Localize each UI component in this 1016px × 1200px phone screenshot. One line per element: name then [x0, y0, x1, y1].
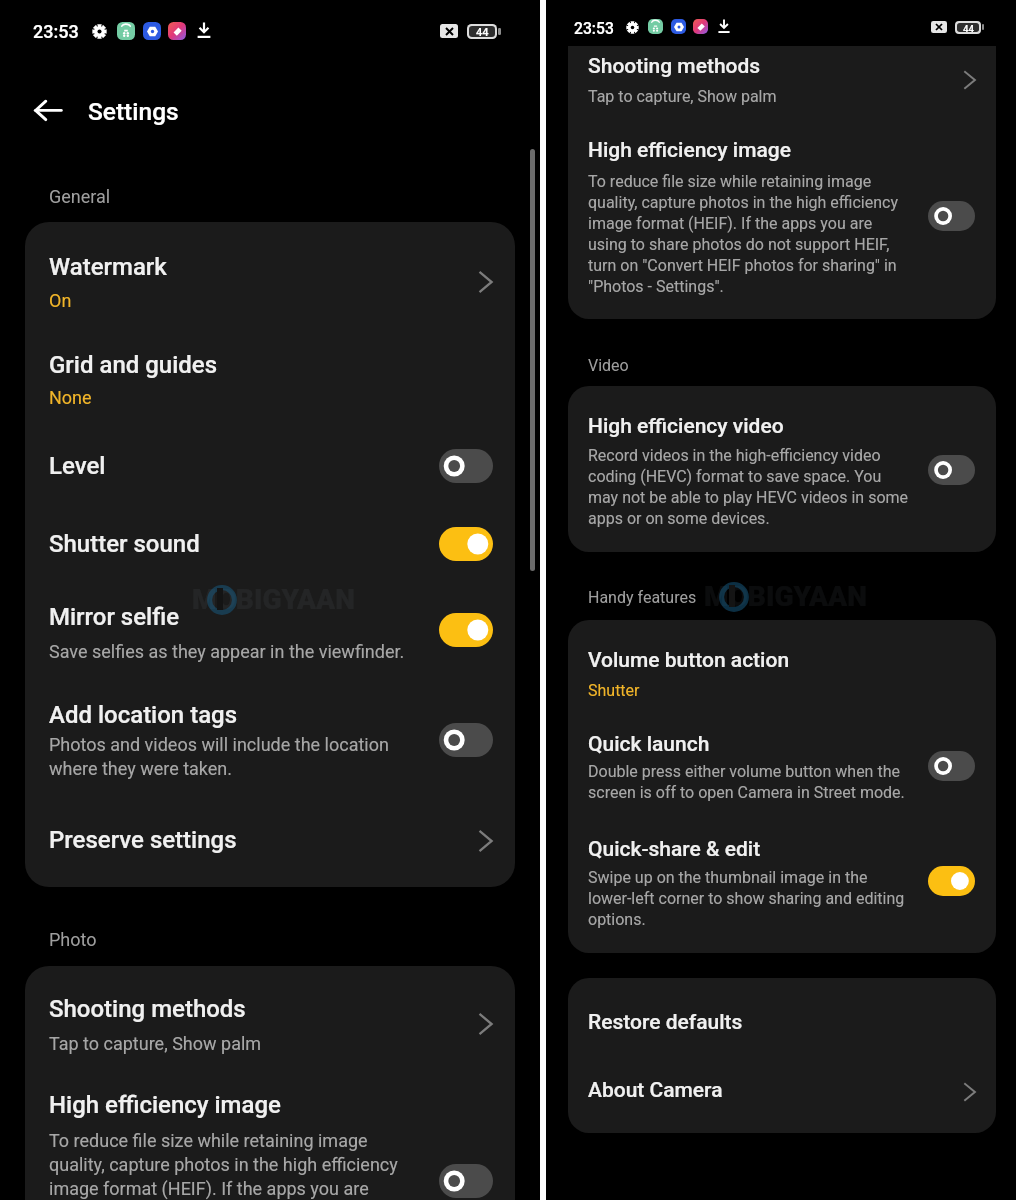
- staticText: High efficiency video: [588, 414, 1016, 439]
- staticText: Shutter: [588, 681, 1016, 700]
- button[interactable]: Volume button action, Shutter: [568, 620, 996, 720]
- button[interactable]: Switch on: [439, 613, 493, 647]
- button[interactable]: Level: [25, 420, 515, 498]
- staticText: 23:53: [33, 21, 573, 42]
- staticText: To reduce file size while retaining imag…: [49, 1128, 401, 1200]
- staticText: High efficiency image: [588, 138, 1016, 163]
- button[interactable]: Switch off: [439, 449, 493, 483]
- staticText: Shutter sound: [49, 530, 589, 558]
- button[interactable]: Switch off: [439, 1164, 493, 1198]
- button[interactable]: High efficiency video: [568, 386, 996, 552]
- staticText: None: [49, 387, 589, 408]
- button[interactable]: Restore defaults: [568, 978, 996, 1048]
- staticText: MOBIGYAAN: [192, 583, 452, 616]
- button[interactable]: Preserve settings: [25, 795, 515, 887]
- button[interactable]: Open: [464, 1002, 508, 1046]
- staticText: Add location tags: [49, 701, 589, 729]
- staticText: Photo: [49, 929, 589, 950]
- staticText: Preserve settings: [49, 826, 589, 854]
- button[interactable]: Quick-share & edit: [568, 825, 996, 953]
- staticText: Restore defaults: [588, 1010, 1016, 1035]
- button[interactable]: High efficiency image: [568, 128, 996, 319]
- staticText: Save selfies as they appear in the viewf…: [49, 639, 409, 663]
- staticText: Record videos in the high-efficiency vid…: [588, 444, 913, 528]
- button[interactable]: Shooting methods: [25, 966, 515, 1065]
- button[interactable]: Open: [464, 819, 508, 863]
- staticText: Watermark: [49, 253, 589, 281]
- button[interactable]: High efficiency image: [25, 1065, 515, 1200]
- button[interactable]: Switch off: [928, 455, 975, 485]
- staticText: Quick launch: [588, 732, 1016, 757]
- staticText: Quick-share & edit: [588, 837, 1016, 862]
- staticText: Level: [49, 452, 589, 480]
- button[interactable]: Switch on: [439, 527, 493, 561]
- staticText: Tap to capture, Show palm: [588, 87, 1016, 106]
- staticText: Double press either volume button when t…: [588, 760, 913, 802]
- staticText: To reduce file size while retaining imag…: [588, 170, 913, 296]
- staticText: Handy features: [588, 588, 1016, 607]
- staticText: Tap to capture, Show palm: [49, 1033, 589, 1054]
- button[interactable]: Switch on: [928, 866, 975, 896]
- staticText: 23:53: [574, 19, 1016, 37]
- staticText: 44: [963, 23, 974, 32]
- button[interactable]: About Camera: [568, 1048, 996, 1133]
- staticText: Swipe up on the thumbnail image in the l…: [588, 866, 913, 929]
- button[interactable]: Watermark, On: [25, 222, 515, 320]
- button[interactable]: Grid and guides, None: [25, 320, 515, 420]
- staticText: High efficiency image: [49, 1091, 589, 1119]
- button[interactable]: Add location tags: [25, 670, 515, 795]
- button[interactable]: Quick launch: [568, 720, 996, 825]
- staticText: About Camera: [588, 1078, 1016, 1103]
- button[interactable]: Switch off: [928, 201, 975, 231]
- staticText: MOBIGYAAN: [704, 580, 964, 613]
- button[interactable]: Mirror selfie: [25, 576, 515, 670]
- button[interactable]: Switch off: [439, 723, 493, 757]
- button[interactable]: Shooting methods: [568, 46, 996, 128]
- staticText: Photos and videos will include the locat…: [49, 732, 401, 780]
- button[interactable]: Open: [948, 1070, 992, 1114]
- staticText: Video: [588, 356, 1016, 375]
- staticText: Shooting methods: [49, 995, 589, 1023]
- staticText: On: [49, 290, 589, 311]
- staticText: 44: [476, 26, 489, 37]
- button[interactable]: Back: [25, 88, 71, 133]
- staticText: General: [49, 186, 589, 207]
- staticText: Grid and guides: [49, 351, 589, 379]
- staticText: Settings: [88, 97, 628, 126]
- button[interactable]: Open: [464, 260, 508, 304]
- staticText: Mirror selfie: [49, 603, 589, 631]
- staticText: Volume button action: [588, 648, 1016, 673]
- button[interactable]: Switch off: [928, 751, 975, 781]
- staticText: Shooting methods: [588, 54, 1016, 79]
- button[interactable]: Open: [948, 58, 992, 102]
- button[interactable]: Shutter sound: [25, 498, 515, 576]
